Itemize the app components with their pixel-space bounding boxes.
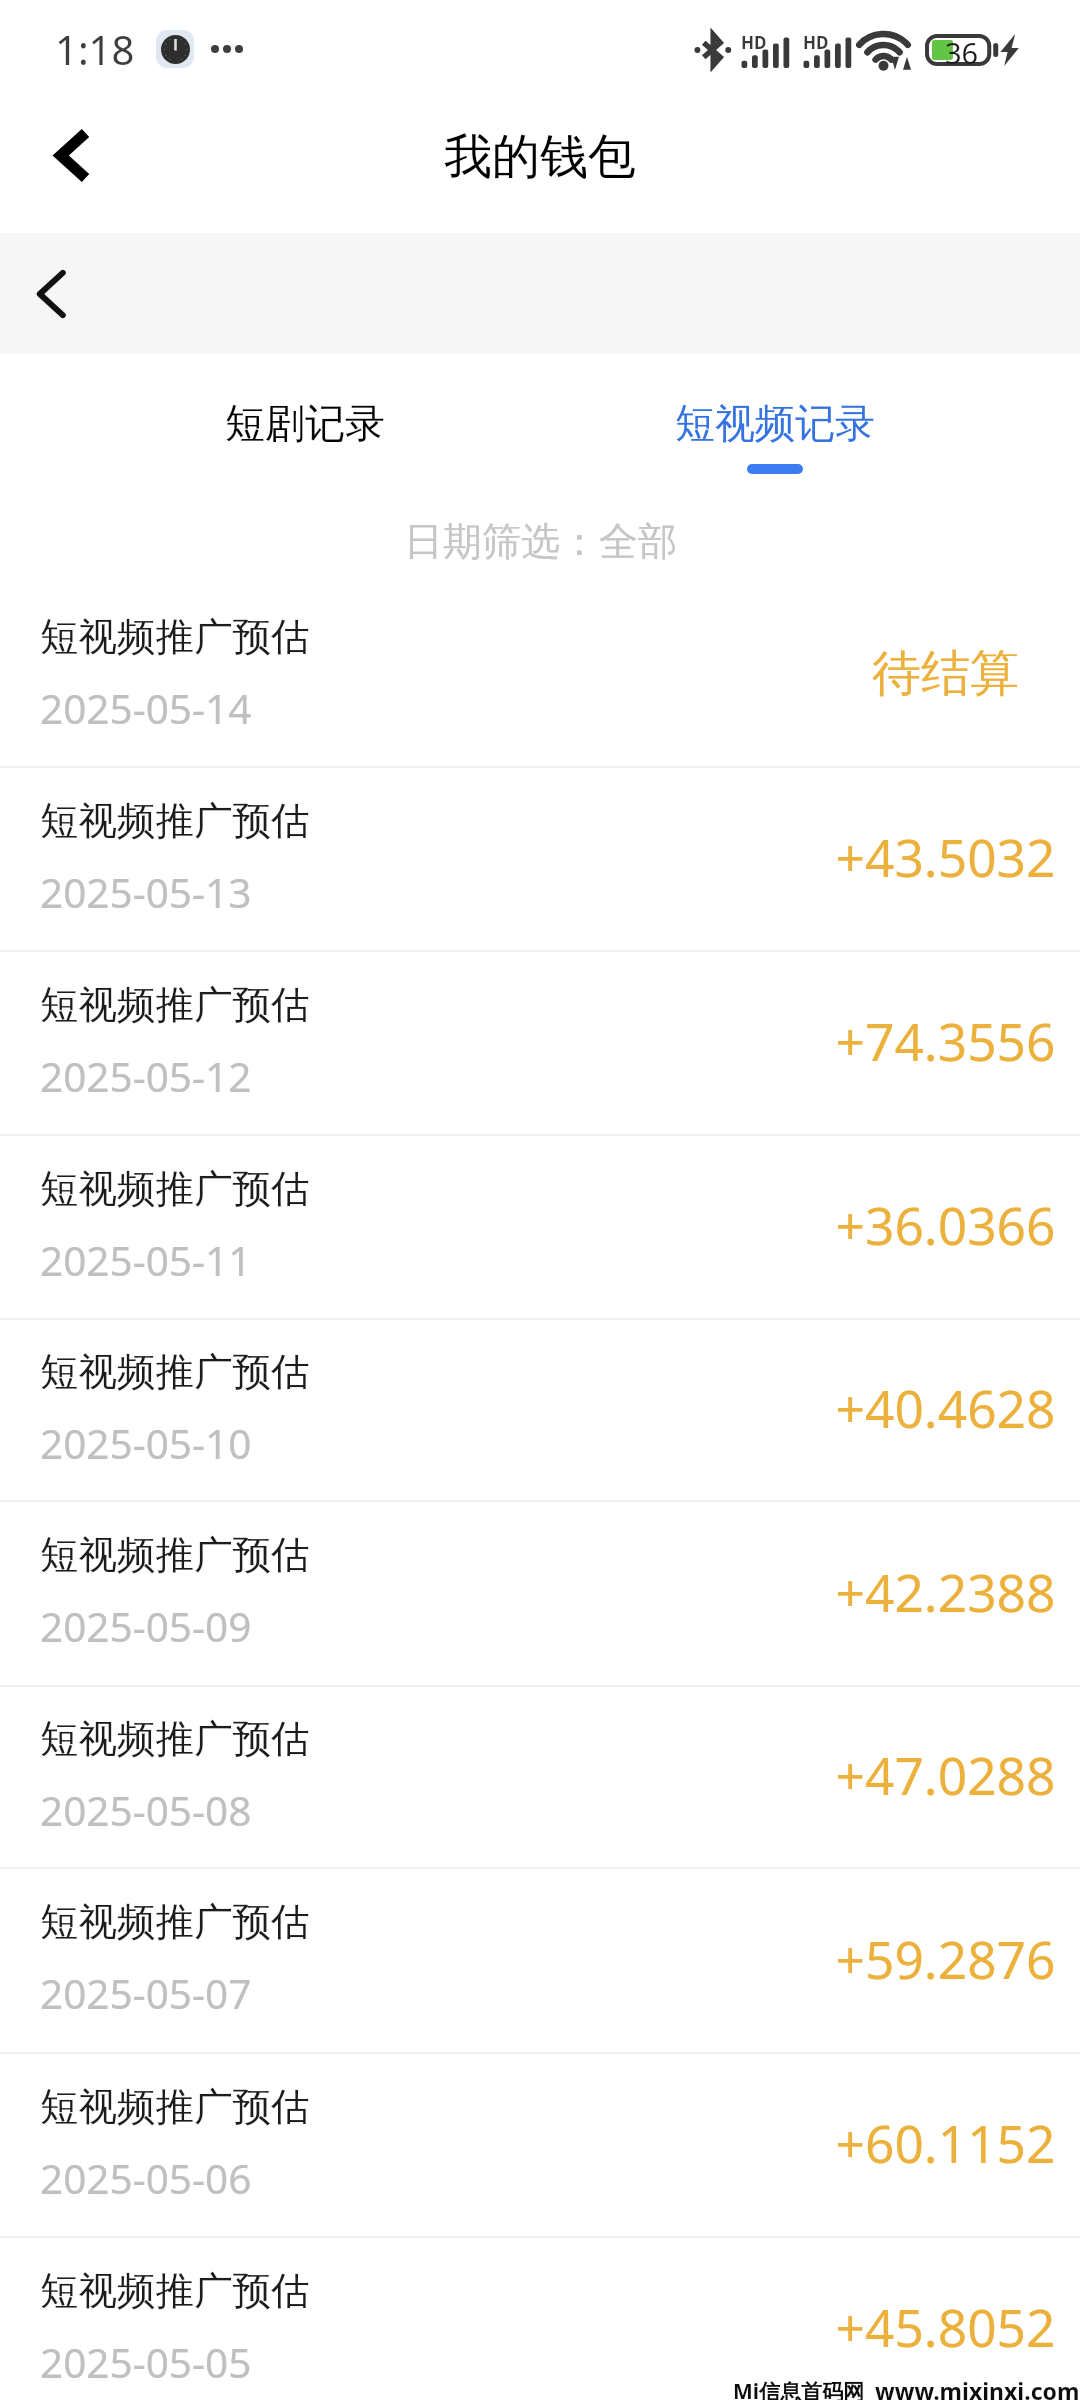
staticText: 2025-05-06: [40, 2151, 252, 2206]
staticText: 短剧记录: [225, 398, 385, 448]
button[interactable]: 日期筛选：全部: [380, 498, 701, 571]
staticText: +60.1152: [835, 2108, 1056, 2178]
staticText: 短视频推广预估: [40, 2267, 310, 2316]
button[interactable]: 短视频推广预估: [0, 2054, 1080, 2236]
staticText: 2025-05-13: [40, 865, 252, 920]
button[interactable]: 短视频推广预估: [0, 952, 1080, 1134]
staticText: 短视频推广预估: [40, 613, 310, 662]
staticText: 2025-05-10: [40, 1416, 252, 1471]
staticText: 我的钱包: [444, 127, 636, 187]
button[interactable]: 短视频推广预估: [0, 1320, 1080, 1500]
staticText: 短视频推广预估: [40, 1715, 310, 1764]
staticText: 短视频推广预估: [40, 1348, 310, 1397]
button[interactable]: 短视频推广预估: [0, 584, 1080, 766]
staticText: 2025-05-09: [40, 1599, 252, 1654]
staticText: +74.3556: [835, 1006, 1056, 1076]
staticText: +36.0366: [835, 1190, 1056, 1260]
staticText: 待结算: [872, 643, 1019, 705]
staticText: Mi信息首码网: [733, 2377, 865, 2400]
staticText: +59.2876: [835, 1924, 1056, 1994]
button[interactable]: 短剧记录: [110, 354, 500, 484]
staticText: 日期筛选：全部: [404, 517, 677, 566]
button[interactable]: 短视频记录: [580, 354, 970, 484]
staticText: 短视频推广预估: [40, 1531, 310, 1580]
staticText: 2025-05-05: [40, 2335, 252, 2390]
staticText: 2025-05-07: [40, 1966, 252, 2021]
button[interactable]: 短视频推广预估: [0, 1502, 1080, 1685]
button[interactable]: 短视频推广预估: [0, 1687, 1080, 1867]
button[interactable]: Back: [15, 258, 87, 330]
staticText: 2025-05-11: [40, 1233, 252, 1288]
staticText: +42.2388: [835, 1557, 1056, 1627]
staticText: 短视频记录: [675, 398, 875, 448]
staticText: +40.4628: [835, 1373, 1056, 1443]
staticText: +47.0288: [835, 1740, 1056, 1810]
button[interactable]: 短视频推广预估: [0, 1136, 1080, 1318]
staticText: 2025-05-12: [40, 1049, 252, 1104]
button[interactable]: Back: [32, 115, 112, 195]
staticText: 短视频推广预估: [40, 1898, 310, 1947]
staticText: 36: [945, 33, 979, 65]
staticText: +45.8052: [835, 2292, 1056, 2362]
button[interactable]: 短视频推广预估: [0, 1869, 1080, 2052]
staticText: 短视频推广预估: [40, 797, 310, 846]
staticText: +43.5032: [835, 822, 1056, 892]
staticText: 短视频推广预估: [40, 1165, 310, 1214]
staticText: 短视频推广预估: [40, 2083, 310, 2132]
staticText: 1:18: [55, 22, 135, 76]
staticText: www.mixinxi.com: [875, 2375, 1080, 2400]
staticText: 2025-05-08: [40, 1783, 252, 1838]
button[interactable]: 短视频推广预估: [0, 768, 1080, 950]
staticText: 短视频推广预估: [40, 981, 310, 1030]
staticText: HD: [803, 31, 829, 54]
staticText: HD: [741, 31, 767, 54]
button[interactable]: 短视频推广预估: [0, 2238, 1080, 2400]
staticText: 2025-05-14: [40, 681, 252, 736]
